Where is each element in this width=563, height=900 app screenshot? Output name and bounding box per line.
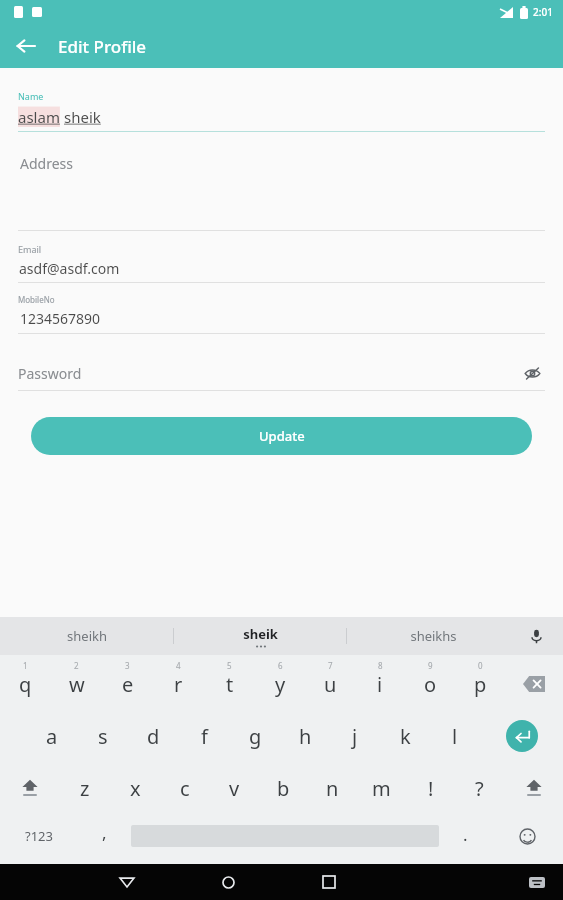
staticText: h [299, 723, 312, 750]
button[interactable]: . [439, 814, 492, 858]
staticText: . [463, 823, 468, 846]
staticText: , [102, 821, 107, 844]
button[interactable]: j [330, 710, 380, 762]
button[interactable]: Back [8, 28, 44, 64]
button[interactable]: a [26, 710, 77, 762]
button[interactable]: Address [18, 132, 545, 231]
staticText: a [46, 723, 58, 750]
button[interactable]: Back [105, 864, 149, 900]
button[interactable]: m [357, 762, 406, 814]
button[interactable]: Enter [480, 710, 563, 762]
button[interactable]: sheik [174, 617, 346, 655]
button[interactable]: n [308, 762, 357, 814]
staticText: 6 [278, 660, 283, 671]
button[interactable]: Shift [504, 762, 563, 814]
button[interactable]: 2 [51, 658, 102, 710]
button[interactable]: Update [31, 417, 532, 455]
button[interactable]: sheikhs [347, 617, 519, 655]
button[interactable]: Email [18, 231, 545, 283]
staticText: 1 [23, 660, 28, 671]
staticText: d [147, 723, 160, 750]
staticText: n [326, 775, 339, 802]
button[interactable]: Emoji [492, 814, 563, 858]
button[interactable]: Show password [519, 360, 545, 386]
staticText: 2 [74, 660, 79, 671]
staticText: v [229, 775, 240, 802]
button[interactable]: Password [18, 334, 545, 391]
staticText: 3 [125, 660, 130, 671]
button[interactable]: b [259, 762, 308, 814]
button[interactable]: 0 [455, 658, 505, 710]
staticText: m [372, 775, 391, 802]
staticText: Address [20, 154, 73, 173]
button[interactable]: Name [18, 90, 545, 132]
staticText: 8 [378, 660, 383, 671]
staticText: x [130, 775, 141, 802]
staticText: y [275, 671, 286, 698]
staticText: b [277, 775, 290, 802]
staticText: 5 [227, 660, 232, 671]
staticText: c [180, 775, 190, 802]
button[interactable]: k [380, 710, 430, 762]
staticText: 9 [428, 660, 433, 671]
staticText: sheikh [67, 627, 107, 645]
button[interactable]: sheikh [0, 617, 173, 655]
button[interactable]: 4 [153, 658, 204, 710]
staticText: sheik [64, 107, 101, 127]
staticText: Email [18, 243, 42, 255]
staticText: ? [475, 775, 484, 802]
button[interactable]: 1 [0, 658, 51, 710]
staticText: 0 [478, 660, 483, 671]
staticText: r [174, 671, 183, 698]
button[interactable]: s [77, 710, 128, 762]
button[interactable]: f [179, 710, 230, 762]
button[interactable]: Recent apps [307, 864, 351, 900]
staticText: o [424, 671, 437, 698]
button[interactable]: 9 [405, 658, 455, 710]
staticText: 2:01 [533, 5, 553, 19]
button[interactable]: Backspace [505, 658, 563, 710]
staticText: f [201, 723, 208, 750]
button[interactable]: g [230, 710, 280, 762]
button[interactable]: Switch keyboard [517, 864, 557, 900]
staticText: u [324, 671, 337, 698]
button[interactable]: Shift [0, 762, 60, 814]
staticText: Update [259, 427, 305, 445]
staticText: p [474, 671, 487, 698]
button[interactable]: d [128, 710, 179, 762]
button[interactable]: ?123 [0, 814, 78, 858]
staticText: 1234567890 [20, 309, 101, 328]
staticText: aslam [18, 107, 60, 127]
button[interactable]: h [280, 710, 330, 762]
staticText: s [98, 723, 108, 750]
button[interactable]: 7 [305, 658, 355, 710]
staticText: g [249, 723, 262, 750]
button[interactable]: 3 [102, 658, 153, 710]
button[interactable]: x [110, 762, 160, 814]
button[interactable]: Home [206, 864, 250, 900]
staticText: ?123 [25, 827, 53, 845]
button[interactable]: z [60, 762, 110, 814]
staticText: sheikhs [410, 627, 457, 645]
staticText: l [452, 723, 458, 750]
staticText: Password [18, 364, 519, 383]
staticText: sheik [243, 625, 278, 643]
button[interactable]: ! [406, 762, 455, 814]
button[interactable]: 6 [255, 658, 305, 710]
staticText: j [352, 723, 358, 750]
staticText: 4 [176, 660, 181, 671]
button[interactable]: c [160, 762, 210, 814]
button[interactable]: l [430, 710, 480, 762]
button[interactable]: Voice input [523, 623, 549, 649]
button[interactable]: ? [455, 762, 504, 814]
button[interactable]: , [78, 814, 131, 858]
staticText: 7 [328, 660, 333, 671]
staticText: ! [428, 775, 434, 802]
button[interactable]: 5 [204, 658, 255, 710]
button[interactable]: MobileNo [18, 283, 545, 334]
button[interactable]: v [210, 762, 259, 814]
button[interactable]: 8 [355, 658, 405, 710]
staticText: Name [18, 90, 44, 102]
staticText: t [226, 671, 234, 698]
